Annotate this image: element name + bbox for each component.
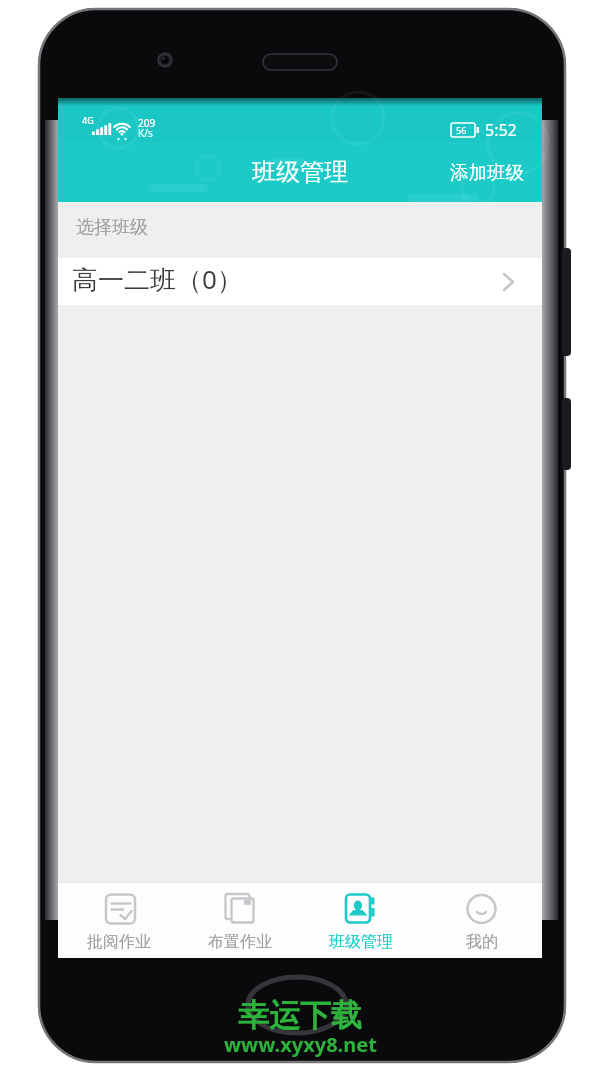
button[interactable]: 布置作业 — [179, 883, 300, 958]
staticText: 5:52 — [485, 119, 517, 141]
button[interactable]: 批阅作业 — [58, 883, 179, 958]
staticText: 班级管理 — [252, 157, 348, 187]
staticText: 班级管理 — [329, 932, 393, 952]
staticText: K/s — [138, 126, 153, 140]
staticText: 56 — [456, 124, 467, 136]
button[interactable]: 班级管理 — [300, 883, 421, 958]
staticText: 高一二班（0） — [72, 261, 243, 297]
staticText: 批阅作业 — [87, 932, 151, 952]
staticText: 我的 — [466, 932, 498, 952]
staticText: 4G — [82, 114, 94, 126]
staticText: 布置作业 — [208, 932, 272, 952]
staticText: 添加班级 — [450, 161, 524, 184]
staticText: 209 — [138, 116, 156, 130]
button[interactable]: 我的 — [421, 883, 542, 958]
staticText: www.xyxy8.net — [224, 1031, 377, 1058]
button[interactable]: 添加班级 — [432, 151, 542, 194]
button[interactable]: 高一二班（0） — [58, 258, 542, 305]
staticText: 幸运下载 — [238, 996, 362, 1035]
staticText: 选择班级 — [76, 216, 148, 239]
